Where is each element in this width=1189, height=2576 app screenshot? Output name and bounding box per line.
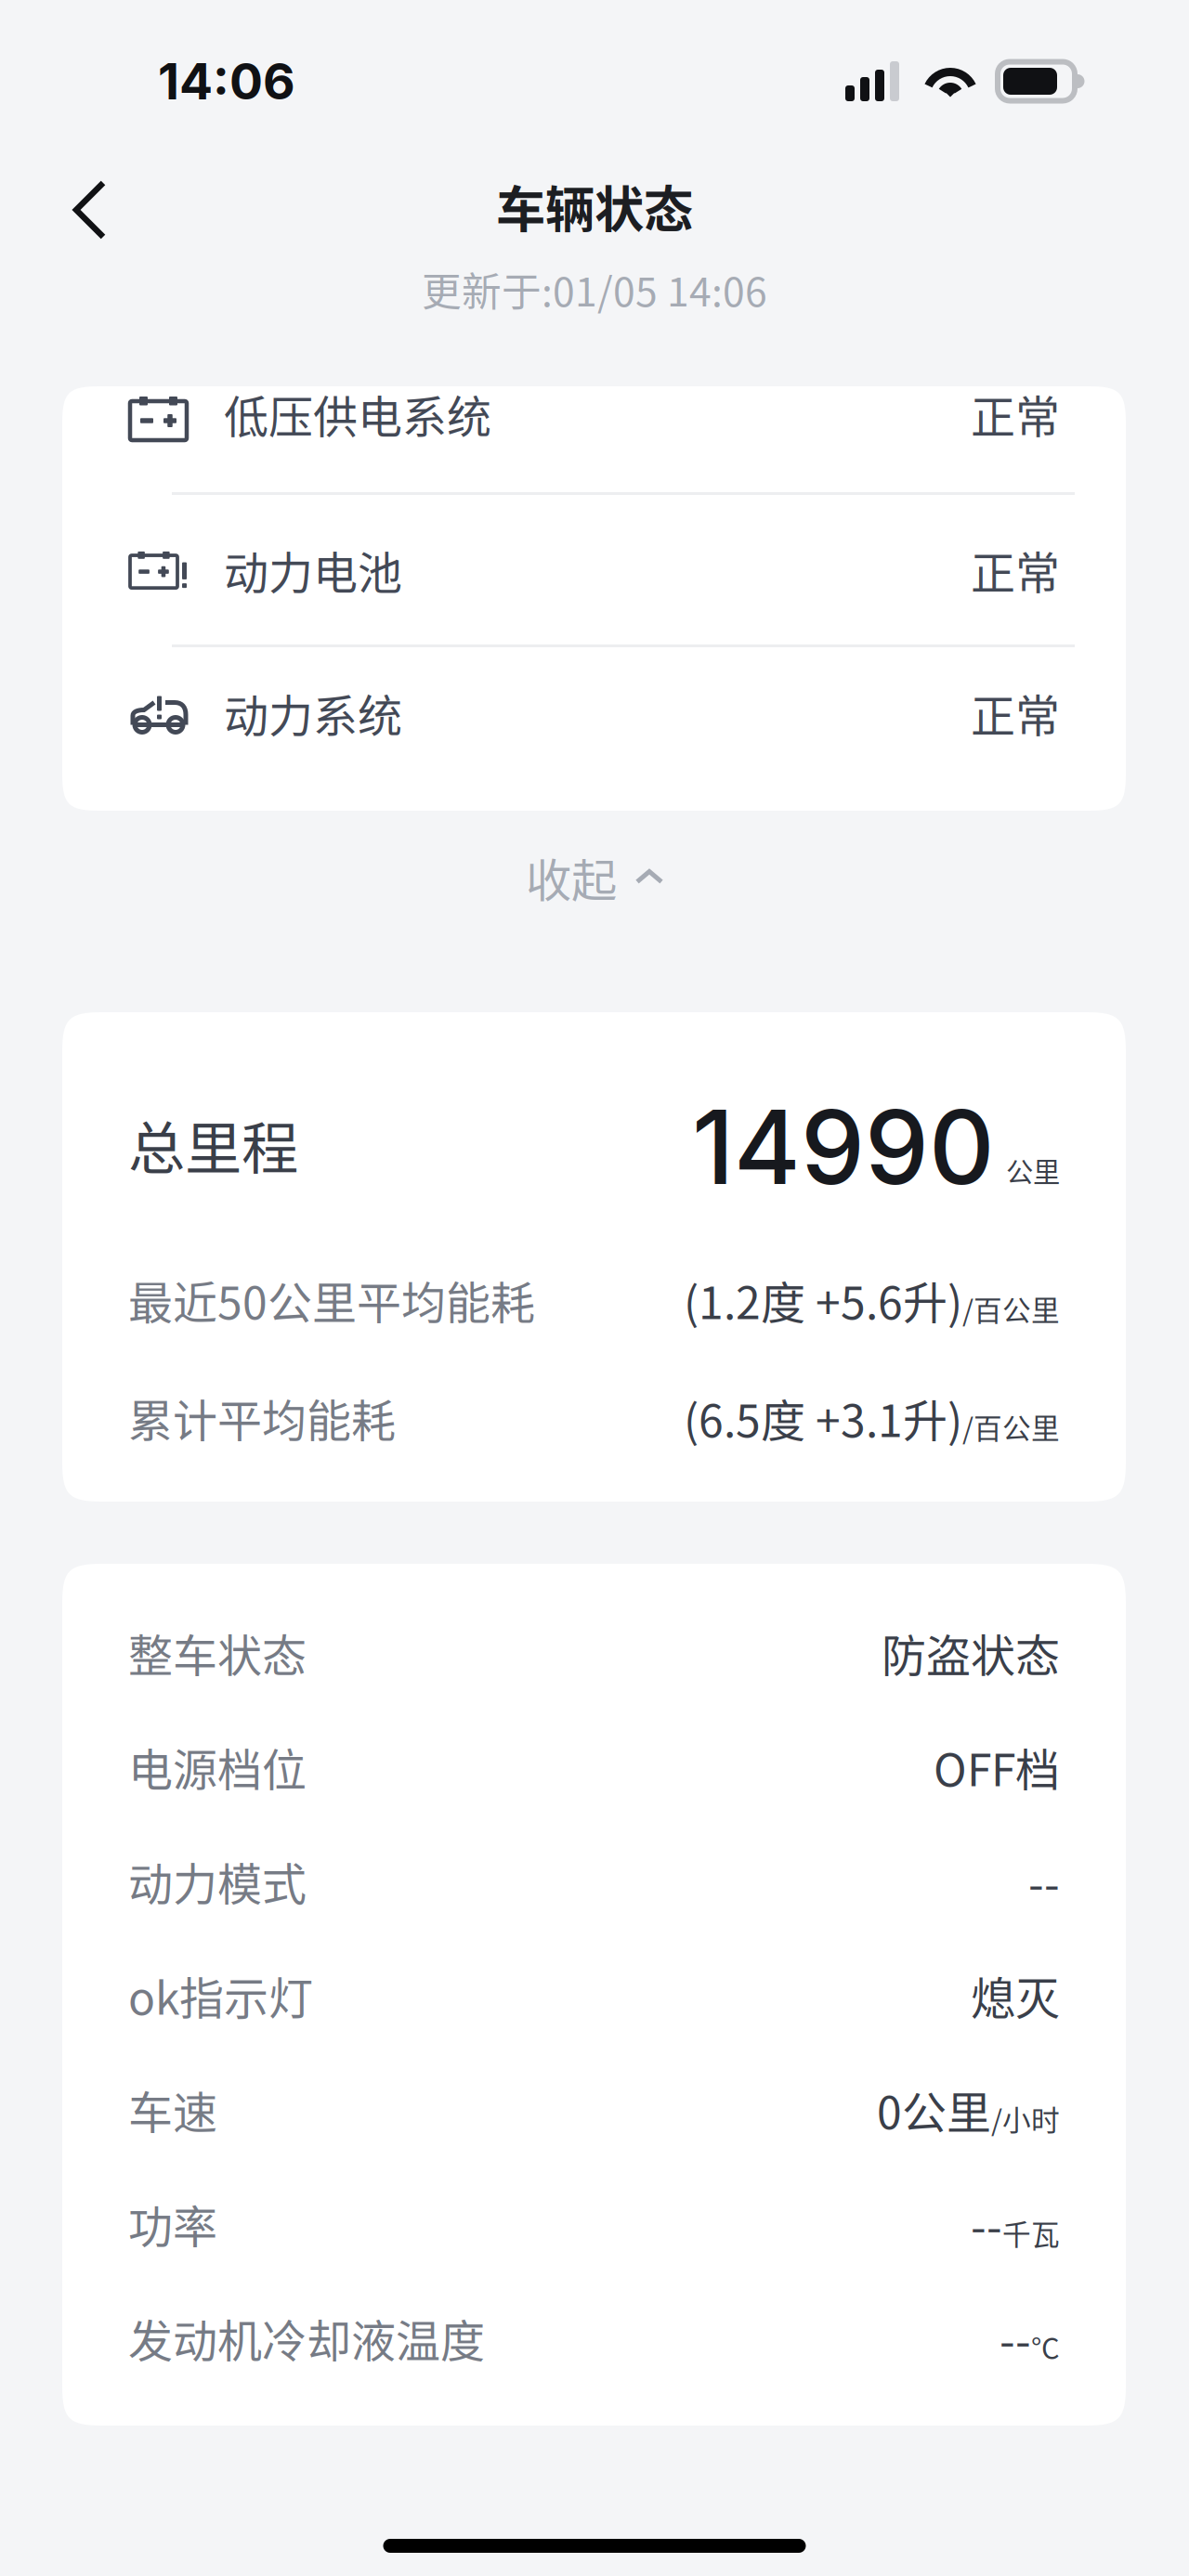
staticText: 最近50公里平均能耗 xyxy=(128,1267,535,1332)
staticText: 累计平均能耗 xyxy=(128,1385,396,1450)
staticText: 车速 xyxy=(128,2077,217,2142)
button[interactable]: 动力电池 xyxy=(62,495,1126,644)
staticText: 总里程 xyxy=(128,1103,298,1186)
button[interactable]: 低压供电系统 xyxy=(62,386,1126,492)
button[interactable]: 收起 xyxy=(0,811,1189,1012)
staticText: 收起 xyxy=(526,844,617,910)
staticText: 更新于:01/05 14:06 xyxy=(422,261,767,318)
staticText: /百公里 xyxy=(962,1406,1060,1447)
staticText: -- xyxy=(971,2191,1002,2256)
staticText: 发动机冷却液温度 xyxy=(128,2305,485,2370)
staticText: 防盗状态 xyxy=(882,1620,1060,1685)
staticText: -- xyxy=(1000,2305,1031,2370)
staticText: OFF档 xyxy=(934,1734,1060,1799)
staticText: /百公里 xyxy=(962,1288,1060,1329)
staticText: 整车状态 xyxy=(128,1620,307,1685)
button[interactable]: 返回 xyxy=(46,146,133,267)
button[interactable]: 动力系统 xyxy=(62,647,1126,800)
staticText: 正常 xyxy=(971,537,1060,602)
staticText: 功率 xyxy=(128,2191,217,2256)
staticText: 动力模式 xyxy=(128,1849,307,1913)
staticText: °C xyxy=(1031,2326,1060,2367)
staticText: 动力电池 xyxy=(224,537,402,602)
staticText: -- xyxy=(1028,1849,1060,1913)
staticText: 14:06 xyxy=(158,51,295,111)
staticText: 低压供电系统 xyxy=(224,381,491,446)
staticText: /小时 xyxy=(991,2098,1060,2139)
staticText: 电源档位 xyxy=(128,1734,307,1799)
staticText: ok指示灯 xyxy=(128,1963,313,2027)
staticText: 千瓦 xyxy=(1002,2212,1060,2253)
staticText: 车辆状态 xyxy=(496,170,693,242)
staticText: 动力系统 xyxy=(224,680,402,745)
staticText: 公里 xyxy=(1006,1151,1060,1190)
staticText: 14990 xyxy=(692,1086,995,1208)
staticText: 正常 xyxy=(971,680,1060,745)
staticText: 熄灭 xyxy=(971,1963,1060,2027)
staticText: (1.2度 +5.6升) xyxy=(684,1267,962,1332)
staticText: 正常 xyxy=(971,381,1060,446)
staticText: 0公里 xyxy=(877,2077,991,2142)
staticText: (6.5度 +3.1升) xyxy=(684,1385,962,1450)
